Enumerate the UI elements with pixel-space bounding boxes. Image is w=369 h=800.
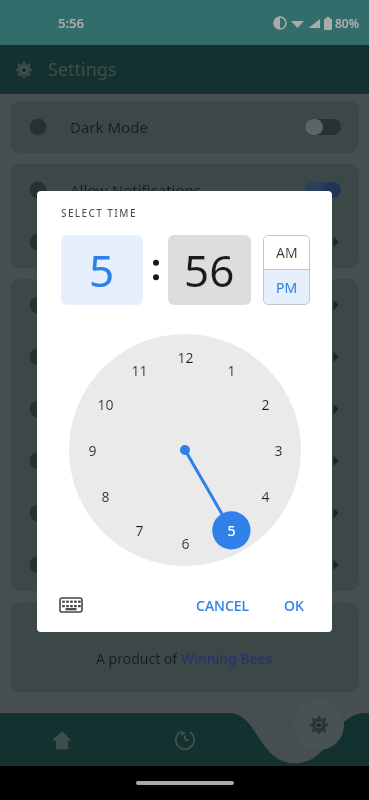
button[interactable]: Share bbox=[10, 279, 359, 331]
button[interactable]: 1 bbox=[216, 355, 246, 385]
staticText: Share bbox=[70, 295, 111, 315]
button[interactable]: Feedback bbox=[10, 383, 359, 435]
button[interactable]: AM bbox=[263, 235, 310, 269]
button[interactable]: 8 bbox=[90, 481, 120, 511]
button[interactable]: 5 bbox=[61, 235, 143, 305]
staticText: SELECT TIME bbox=[61, 206, 137, 220]
button[interactable]: Reminder Time bbox=[10, 216, 359, 268]
button[interactable]: More Apps bbox=[10, 539, 359, 591]
button[interactable]: 56 bbox=[168, 235, 251, 305]
button[interactable]: OK bbox=[274, 588, 314, 623]
staticText: 4 bbox=[261, 487, 270, 506]
staticText: 56 bbox=[184, 240, 235, 300]
staticText: 7 bbox=[135, 521, 144, 540]
staticText: 5 bbox=[89, 240, 115, 300]
staticText: 1 bbox=[227, 361, 236, 380]
button[interactable]: 5 bbox=[216, 515, 246, 545]
staticText: PM bbox=[276, 278, 298, 297]
button[interactable]: About bbox=[10, 435, 359, 487]
button[interactable]: 7 bbox=[124, 515, 154, 545]
button[interactable]: History bbox=[123, 713, 246, 766]
staticText: Reminder Time bbox=[70, 232, 178, 252]
staticText: 8 bbox=[101, 487, 110, 506]
button[interactable]: 10 bbox=[90, 389, 120, 419]
button[interactable]: 2 bbox=[250, 389, 280, 419]
staticText: 80% bbox=[335, 15, 359, 31]
staticText: 12 bbox=[177, 348, 194, 367]
button[interactable]: CANCEL bbox=[186, 588, 260, 623]
button[interactable]: PM bbox=[263, 270, 310, 305]
staticText: Privacy bbox=[70, 503, 121, 523]
staticText: A product of bbox=[96, 649, 181, 668]
staticText: 2 bbox=[261, 395, 270, 414]
button[interactable]: Settings bbox=[294, 700, 344, 750]
button[interactable]: 4 bbox=[250, 481, 280, 511]
staticText: 5:56 bbox=[58, 14, 84, 32]
staticText: 11 bbox=[131, 361, 148, 380]
button[interactable] bbox=[305, 182, 341, 198]
button[interactable]: Allow Notifications bbox=[10, 164, 359, 216]
staticText: AM bbox=[276, 243, 298, 262]
button[interactable]: 12 bbox=[170, 342, 200, 372]
button[interactable]: 6 bbox=[170, 528, 200, 558]
staticText: About bbox=[70, 451, 113, 471]
staticText: 3 bbox=[274, 441, 283, 460]
staticText: Version 1.0.0 bbox=[139, 614, 230, 634]
staticText: Settings bbox=[48, 57, 117, 82]
staticText: Winning Bees bbox=[181, 649, 273, 668]
staticText: CANCEL bbox=[196, 596, 250, 615]
staticText: 6 bbox=[181, 534, 190, 553]
staticText: 10 bbox=[97, 395, 114, 414]
button[interactable]: 3 bbox=[263, 435, 293, 465]
button[interactable]: Privacy bbox=[10, 487, 359, 539]
staticText: Allow Notifications bbox=[70, 180, 202, 200]
staticText: Feedback bbox=[70, 399, 137, 419]
staticText: 5 bbox=[227, 521, 236, 540]
staticText: 9 bbox=[88, 441, 97, 460]
staticText: Rate Us bbox=[70, 347, 124, 367]
button[interactable]: Rate Us bbox=[10, 331, 359, 383]
button[interactable]: 11 bbox=[124, 355, 154, 385]
button[interactable] bbox=[305, 119, 341, 135]
button[interactable]: Dark Mode bbox=[10, 101, 359, 153]
button[interactable]: 9 bbox=[77, 435, 107, 465]
button[interactable]: Home bbox=[0, 713, 123, 766]
staticText: Dark Mode bbox=[70, 117, 148, 137]
staticText: OK bbox=[284, 596, 304, 615]
button[interactable]: Switch to text input bbox=[55, 589, 87, 621]
